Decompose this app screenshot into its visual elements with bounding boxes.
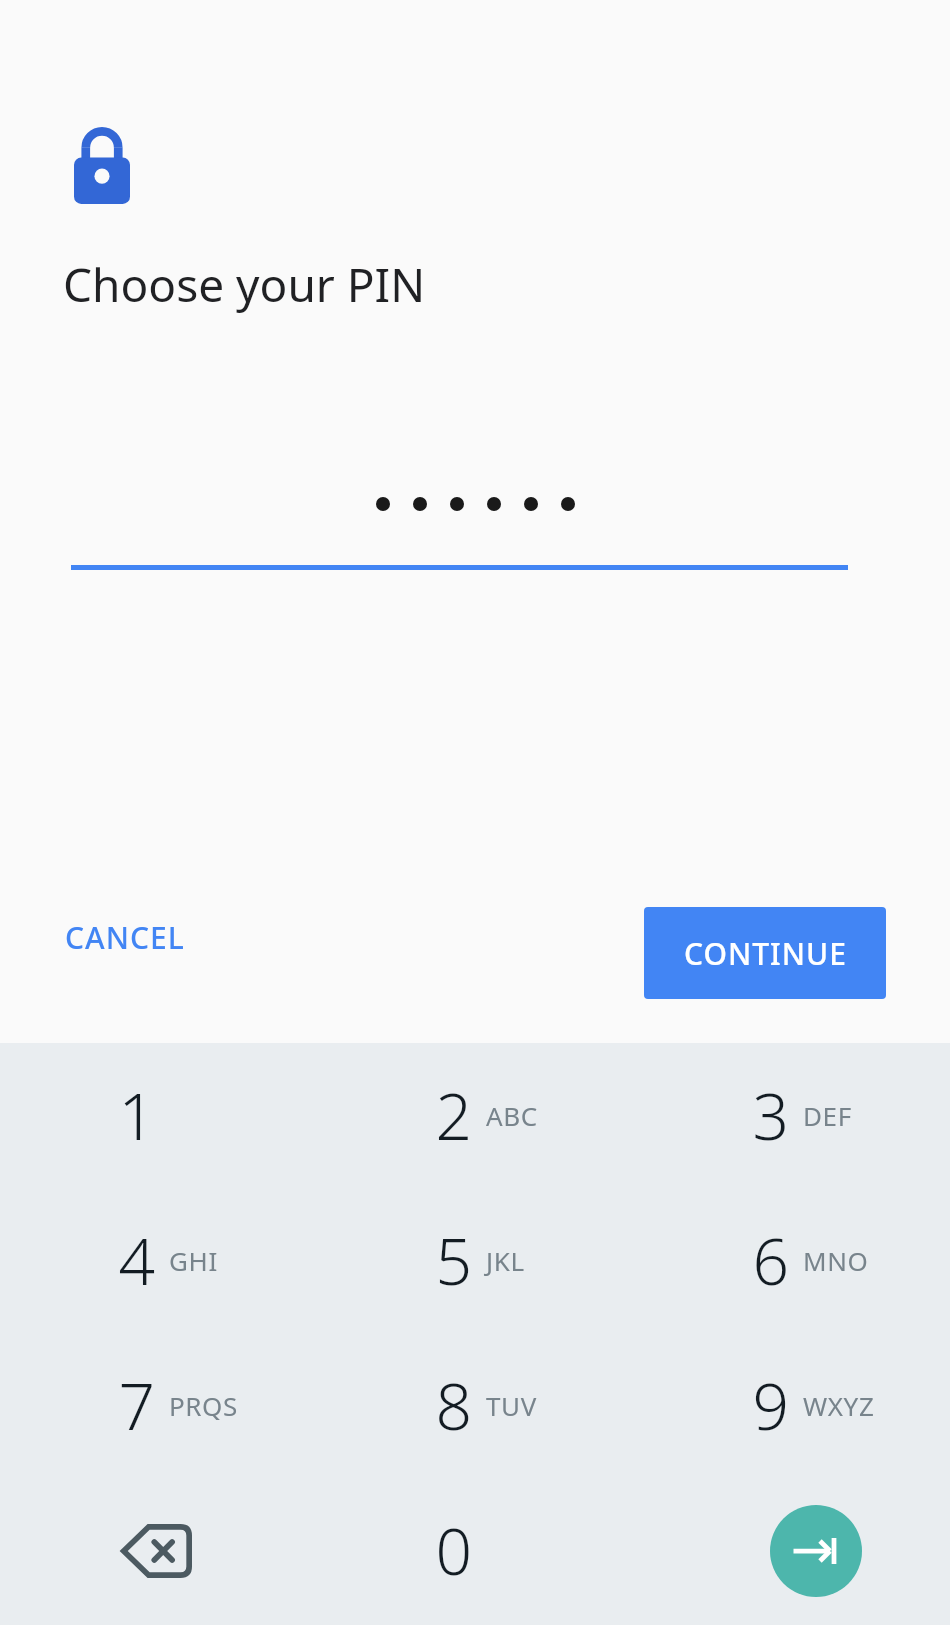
button[interactable]: 0: [316, 1478, 633, 1623]
staticText: 6: [752, 1217, 789, 1304]
staticText: 3: [752, 1072, 789, 1159]
staticText: WXYZ: [803, 1388, 875, 1423]
staticText: JKL: [486, 1243, 525, 1278]
staticText: 2: [435, 1072, 472, 1159]
staticText: 9: [752, 1362, 789, 1449]
staticText: CANCEL: [65, 917, 185, 958]
button[interactable]: 5: [316, 1188, 633, 1333]
staticText: DEF: [803, 1098, 852, 1133]
staticText: TUV: [486, 1388, 537, 1423]
staticText: 5: [435, 1217, 472, 1304]
button[interactable]: 7: [0, 1333, 316, 1478]
staticText: CONTINUE: [684, 933, 847, 974]
staticText: 4: [118, 1217, 155, 1304]
staticText: 0: [435, 1507, 472, 1594]
button[interactable]: 3: [633, 1043, 950, 1188]
staticText: 8: [435, 1362, 472, 1449]
staticText: 7: [118, 1362, 155, 1449]
button[interactable]: 6: [633, 1188, 950, 1333]
button[interactable]: 8: [316, 1333, 633, 1478]
button[interactable]: 2: [316, 1043, 633, 1188]
button[interactable]: Backspace: [0, 1478, 316, 1623]
button[interactable]: 4: [0, 1188, 316, 1333]
button[interactable]: CANCEL: [45, 903, 205, 972]
staticText: MNO: [803, 1243, 869, 1278]
staticText: Choose your PIN: [63, 253, 426, 316]
staticText: 1: [118, 1072, 155, 1159]
button[interactable]: 1: [0, 1043, 316, 1188]
button[interactable]: CONTINUE: [644, 907, 886, 999]
staticText: GHI: [169, 1243, 218, 1278]
button[interactable]: 9: [633, 1333, 950, 1478]
button[interactable]: Enter: [633, 1478, 950, 1623]
staticText: PRQS: [169, 1388, 238, 1423]
staticText: ABC: [486, 1098, 538, 1133]
